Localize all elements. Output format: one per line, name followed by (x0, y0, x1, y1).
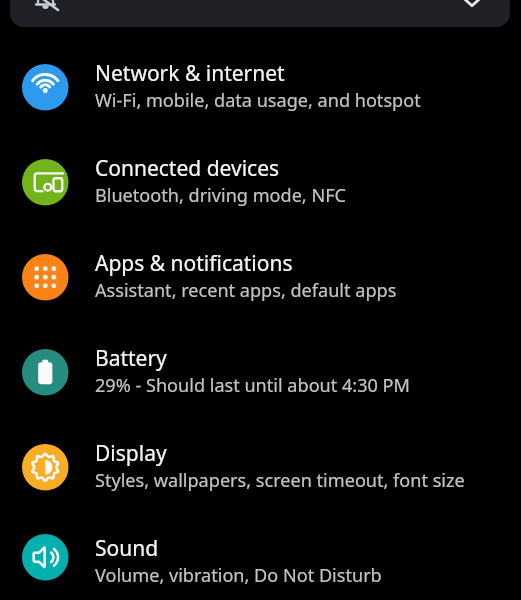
button[interactable]: Network & internet (0, 40, 521, 135)
button[interactable]: Display (0, 420, 521, 515)
staticText: 29% - Should last until about 4:30 PM (95, 373, 410, 398)
staticText: Display (95, 439, 167, 468)
button[interactable]: Connected devices (0, 135, 521, 230)
button[interactable]: Battery (0, 325, 521, 420)
staticText: Battery (95, 344, 167, 373)
staticText: Volume, vibration, Do Not Disturb (95, 563, 382, 588)
button[interactable]: Apps & notifications (0, 230, 521, 325)
button[interactable] (10, 0, 510, 27)
staticText: Sound (95, 534, 159, 563)
staticText: Styles, wallpapers, screen timeout, font… (95, 468, 465, 493)
staticText: Assistant, recent apps, default apps (95, 278, 397, 303)
staticText: Connected devices (95, 154, 280, 183)
staticText: Bluetooth, driving mode, NFC (95, 183, 346, 208)
staticText: Network & internet (95, 59, 285, 88)
staticText: Wi-Fi, mobile, data usage, and hotspot (95, 88, 421, 113)
button[interactable]: Sound (0, 515, 521, 600)
staticText: Apps & notifications (95, 249, 293, 278)
